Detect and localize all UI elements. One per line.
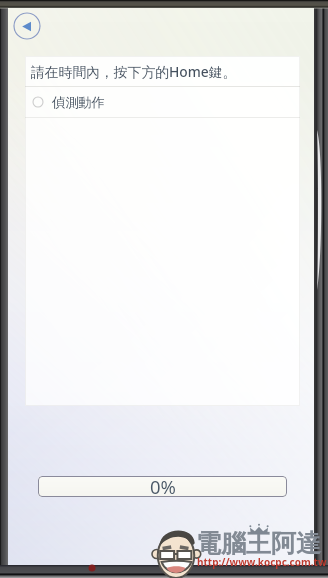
- button[interactable]: Back: [13, 12, 41, 40]
- staticText: 請在時間內，按下方的Home鍵。: [31, 62, 237, 81]
- staticText: 0%: [150, 476, 176, 495]
- staticText: 電腦王阿達: [196, 528, 321, 559]
- button[interactable]: 偵測動作: [25, 87, 300, 117]
- button[interactable]: 0%: [38, 476, 287, 497]
- staticText: 偵測動作: [52, 94, 105, 111]
- staticText: http://www.kocpc.com.tw: [197, 555, 327, 569]
